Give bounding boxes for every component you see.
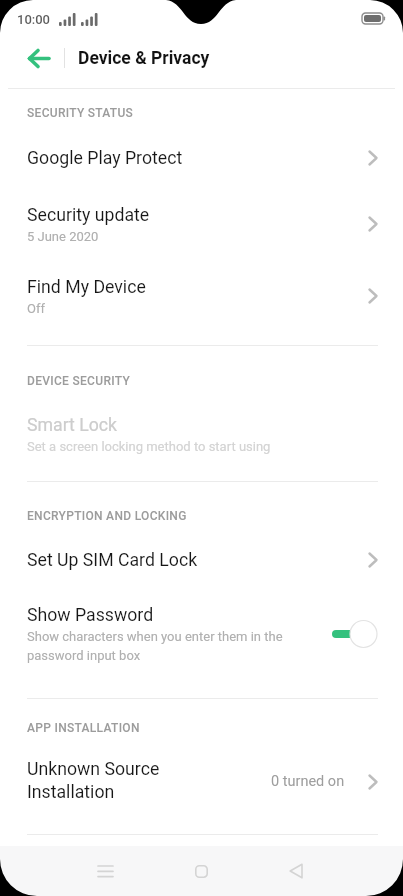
button[interactable]: Set Up SIM Card Lock: [0, 536, 403, 584]
button[interactable]: Show Password: [0, 592, 403, 676]
staticText: SECURITY STATUS: [27, 106, 134, 120]
staticText: Set a screen locking method to start usi…: [27, 439, 367, 454]
button[interactable]: Smart Lock: [0, 398, 403, 470]
button[interactable]: Security update: [0, 190, 403, 258]
staticText: Show characters when you enter them in t…: [27, 629, 315, 663]
button[interactable]: [177, 846, 225, 896]
button[interactable]: Unknown Source Installation: [0, 746, 403, 816]
button[interactable]: Find My Device: [0, 262, 403, 330]
staticText: Set Up SIM Card Lock: [27, 550, 198, 571]
button[interactable]: [19, 38, 59, 78]
staticText: Off: [27, 301, 317, 316]
staticText: Show Password: [27, 605, 154, 626]
staticText: 0 turned on: [271, 773, 345, 790]
staticText: Device & Privacy: [78, 48, 210, 69]
button[interactable]: [272, 846, 320, 896]
button[interactable]: [332, 620, 378, 648]
staticText: Find My Device: [27, 277, 146, 298]
staticText: Unknown Source Installation: [27, 759, 187, 803]
staticText: 5 June 2020: [27, 229, 317, 244]
staticText: 10:00: [17, 12, 51, 27]
button[interactable]: Google Play Protect: [0, 134, 403, 182]
button[interactable]: [81, 846, 129, 896]
staticText: DEVICE SECURITY: [27, 374, 130, 388]
staticText: Google Play Protect: [27, 148, 183, 169]
staticText: Smart Lock: [27, 415, 118, 436]
staticText: ENCRYPTION AND LOCKING: [27, 509, 187, 523]
staticText: Security update: [27, 205, 150, 226]
staticText: APP INSTALLATION: [27, 721, 140, 735]
